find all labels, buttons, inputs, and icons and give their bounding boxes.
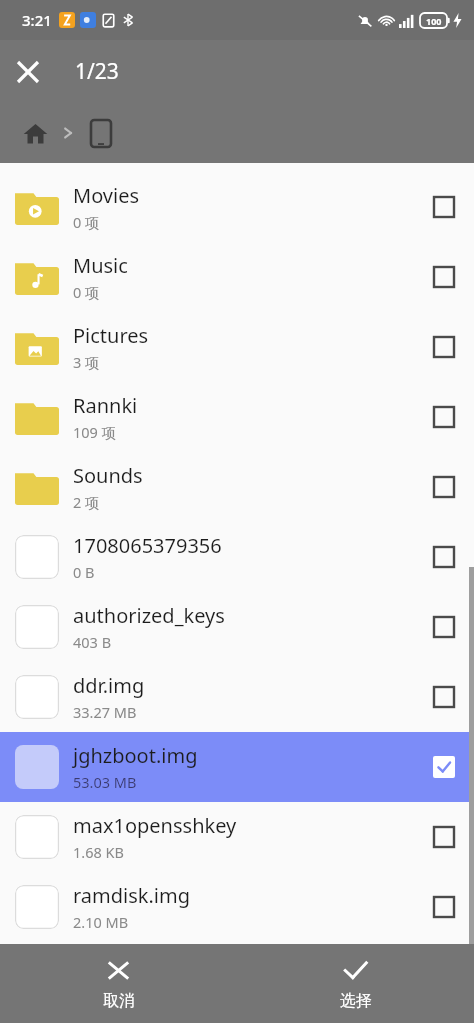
staticText: 1/23 xyxy=(75,57,119,86)
button[interactable]: jghzboot.img xyxy=(0,732,474,802)
button[interactable]: max1opensshkey xyxy=(0,802,474,872)
staticText: authorized_keys xyxy=(73,602,225,629)
button[interactable]: 取消 xyxy=(0,944,237,1023)
staticText: 53.03 MB xyxy=(73,772,137,792)
button[interactable]: Select max1opensshkey xyxy=(420,802,468,872)
button[interactable]: Rannki xyxy=(0,382,474,452)
button[interactable]: 1708065379356 xyxy=(0,522,474,592)
staticText: Music xyxy=(73,252,128,279)
staticText: 100 xyxy=(426,15,442,27)
staticText: ramdisk.img xyxy=(73,882,191,909)
button[interactable]: Sounds xyxy=(0,452,474,522)
button[interactable]: Select ramdisk.img xyxy=(420,872,468,942)
staticText: 0 项 xyxy=(73,282,100,302)
button[interactable]: ddr.img xyxy=(0,662,474,732)
button[interactable]: Movies xyxy=(0,172,474,242)
staticText: jghzboot.img xyxy=(73,742,198,769)
staticText: 取消 xyxy=(103,991,135,1011)
button[interactable]: Select Music xyxy=(420,242,468,312)
button[interactable]: Select Rannki xyxy=(420,382,468,452)
staticText: 2 项 xyxy=(73,492,100,512)
button[interactable]: Select 1708065379356 xyxy=(420,522,468,592)
button[interactable]: Select jghzboot.img xyxy=(420,732,468,802)
button[interactable]: Select Sounds xyxy=(420,452,468,522)
staticText: 1.68 KB xyxy=(73,842,124,862)
button[interactable]: Select ddr.img xyxy=(420,662,468,732)
staticText: 1708065379356 xyxy=(73,532,222,559)
button[interactable]: Pictures xyxy=(0,312,474,382)
staticText: 选择 xyxy=(340,991,372,1011)
button[interactable]: Music xyxy=(0,242,474,312)
staticText: 33.27 MB xyxy=(73,702,137,722)
button[interactable]: ramdisk.img xyxy=(0,872,474,942)
staticText: Movies xyxy=(73,182,140,209)
button[interactable]: Device storage xyxy=(84,116,118,150)
staticText: 0 B xyxy=(73,562,95,582)
staticText: 3 项 xyxy=(73,352,100,372)
staticText: 403 B xyxy=(73,632,112,652)
staticText: max1opensshkey xyxy=(73,812,237,839)
button[interactable]: Select Pictures xyxy=(420,312,468,382)
button[interactable]: Home xyxy=(18,116,52,150)
staticText: ddr.img xyxy=(73,672,145,699)
button[interactable]: Select Movies xyxy=(420,172,468,242)
button[interactable]: 选择 xyxy=(237,944,474,1023)
staticText: Pictures xyxy=(73,322,149,349)
staticText: 109 项 xyxy=(73,422,117,442)
button[interactable]: Close xyxy=(0,44,56,100)
button[interactable]: Select authorized_keys xyxy=(420,592,468,662)
staticText: 0 项 xyxy=(73,212,100,232)
staticText: Rannki xyxy=(73,392,138,419)
staticText: 2.10 MB xyxy=(73,912,129,932)
staticText: 3:21 xyxy=(22,10,52,30)
button[interactable]: authorized_keys xyxy=(0,592,474,662)
staticText: Sounds xyxy=(73,462,143,489)
